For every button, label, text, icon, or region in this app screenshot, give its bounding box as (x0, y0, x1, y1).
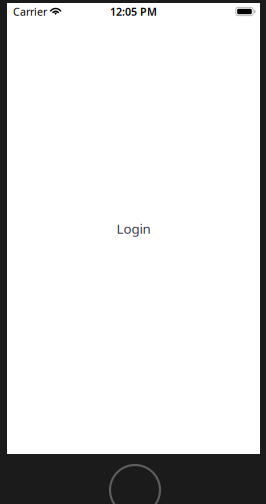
staticText: Login (116, 220, 150, 237)
staticText: Carrier (13, 4, 47, 19)
staticText: 12:05 PM (110, 4, 157, 19)
